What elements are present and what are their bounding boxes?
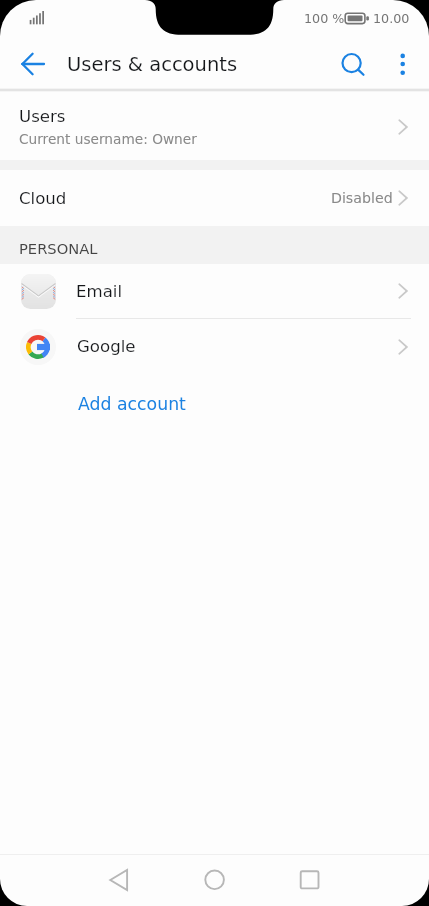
button[interactable]: Users <box>0 93 429 161</box>
staticText: Email <box>76 282 123 301</box>
button[interactable]: More options <box>386 44 420 84</box>
staticText: Cloud <box>19 189 67 208</box>
staticText: PERSONAL <box>19 240 98 257</box>
button[interactable]: Add account <box>68 388 196 420</box>
button[interactable]: Cloud <box>0 170 429 226</box>
staticText: Users & accounts <box>67 53 238 76</box>
button[interactable]: Google <box>0 319 429 374</box>
staticText: Users <box>19 107 66 126</box>
staticText: 10.00 <box>373 11 410 26</box>
button[interactable]: Recent apps <box>275 856 345 904</box>
button[interactable]: Search <box>330 44 372 84</box>
staticText: Current username: Owner <box>19 131 197 147</box>
button[interactable]: Back <box>84 856 154 904</box>
button[interactable]: Email <box>0 264 429 318</box>
staticText: 100 % <box>304 11 345 26</box>
staticText: Disabled <box>331 190 393 207</box>
staticText: Google <box>77 337 136 356</box>
button[interactable]: Home <box>180 856 250 904</box>
staticText: Add account <box>78 394 186 414</box>
button[interactable]: Back <box>10 44 54 84</box>
